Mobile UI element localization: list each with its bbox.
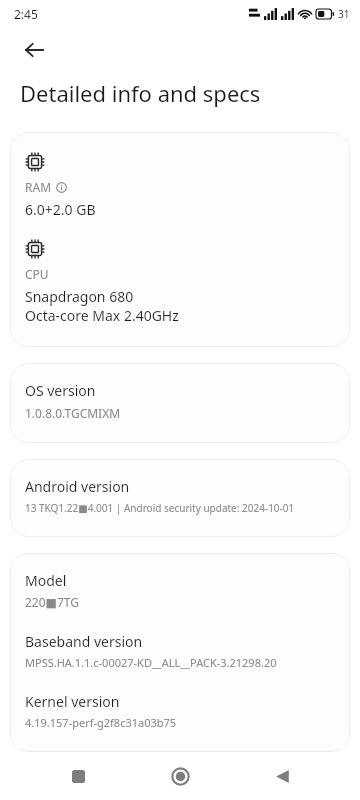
staticText: 220■7TG bbox=[25, 594, 79, 610]
staticText: CPU bbox=[25, 266, 49, 282]
staticText: 6.0+2.0 GB bbox=[25, 200, 96, 219]
button[interactable]: Model bbox=[10, 553, 350, 752]
staticText: Kernel version bbox=[25, 692, 120, 711]
staticText: 13 TKQ1.22■4.001 | Android security upda… bbox=[25, 501, 295, 515]
staticText: RAM bbox=[25, 179, 52, 195]
staticText: 31 bbox=[338, 7, 350, 21]
button[interactable]: RAM bbox=[10, 132, 350, 347]
button[interactable]: OS version bbox=[10, 363, 350, 443]
staticText: Octa-core Max 2.40GHz bbox=[25, 306, 179, 325]
staticText: MPSS.HA.1.1.c-00027-KD__ALL__PACK-3.2129… bbox=[25, 655, 277, 670]
staticText: 1.0.8.0.TGCMIXM bbox=[25, 405, 121, 421]
staticText: Baseband version bbox=[25, 632, 143, 651]
staticText: Snapdragon 680 bbox=[25, 287, 134, 306]
staticText: Android version bbox=[25, 477, 130, 496]
staticText: 2:45 bbox=[14, 6, 38, 22]
staticText: 4.19.157-perf-g2f8c31a03b75 bbox=[25, 715, 177, 730]
button[interactable]: Home bbox=[156, 752, 204, 800]
staticText: Detailed info and specs bbox=[20, 78, 261, 108]
button[interactable]: RAM info bbox=[56, 182, 67, 193]
button[interactable] bbox=[10, 768, 350, 800]
button[interactable]: Recent apps bbox=[54, 752, 102, 800]
button[interactable]: Android version bbox=[10, 459, 350, 537]
button[interactable]: Back bbox=[258, 752, 306, 800]
staticText: OS version bbox=[25, 381, 96, 400]
button[interactable]: Back bbox=[12, 28, 56, 72]
staticText: Model bbox=[25, 571, 67, 590]
